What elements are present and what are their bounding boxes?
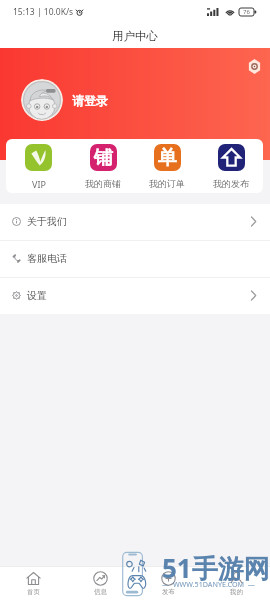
button[interactable]: 设置 [0,278,270,314]
staticText: 单 [158,146,177,170]
staticText: 信息 [94,588,107,596]
button[interactable]: 关于我们 [0,204,270,240]
staticText: 用户中心 [112,29,158,43]
button[interactable]: 客服电话 [0,241,270,277]
button[interactable]: 信息 [67,567,134,600]
button[interactable]: 铺 [71,139,135,193]
staticText: — WWW.51DANYE.COM — [162,579,256,589]
staticText: 关于我们 [27,215,67,228]
staticText: 客服电话 [27,252,67,265]
button[interactable]: Settings [246,58,262,74]
staticText: VIP [32,178,46,190]
staticText: 铺 [94,146,113,170]
staticText: 首页 [27,588,40,596]
button[interactable]: 请登录 [72,93,108,108]
staticText: 我的 [230,588,243,596]
button[interactable]: 首页 [0,567,67,600]
button[interactable]: VIP [6,139,71,193]
staticText: 发布 [162,588,175,596]
staticText: 15:13 | 10.0K/s [13,6,74,18]
staticText: 51手游网 [162,550,270,586]
staticText: 我的商铺 [85,178,121,189]
button[interactable] [21,79,63,121]
staticText: 我的订单 [149,178,185,189]
button[interactable]: 单 [135,139,199,193]
staticText: 我的发布 [213,178,249,189]
button[interactable]: 发布 [134,567,202,600]
staticText: 76 [243,8,250,16]
staticText: 设置 [27,289,47,302]
button[interactable]: 我的发布 [199,139,263,193]
button[interactable]: 我的 [202,567,270,600]
